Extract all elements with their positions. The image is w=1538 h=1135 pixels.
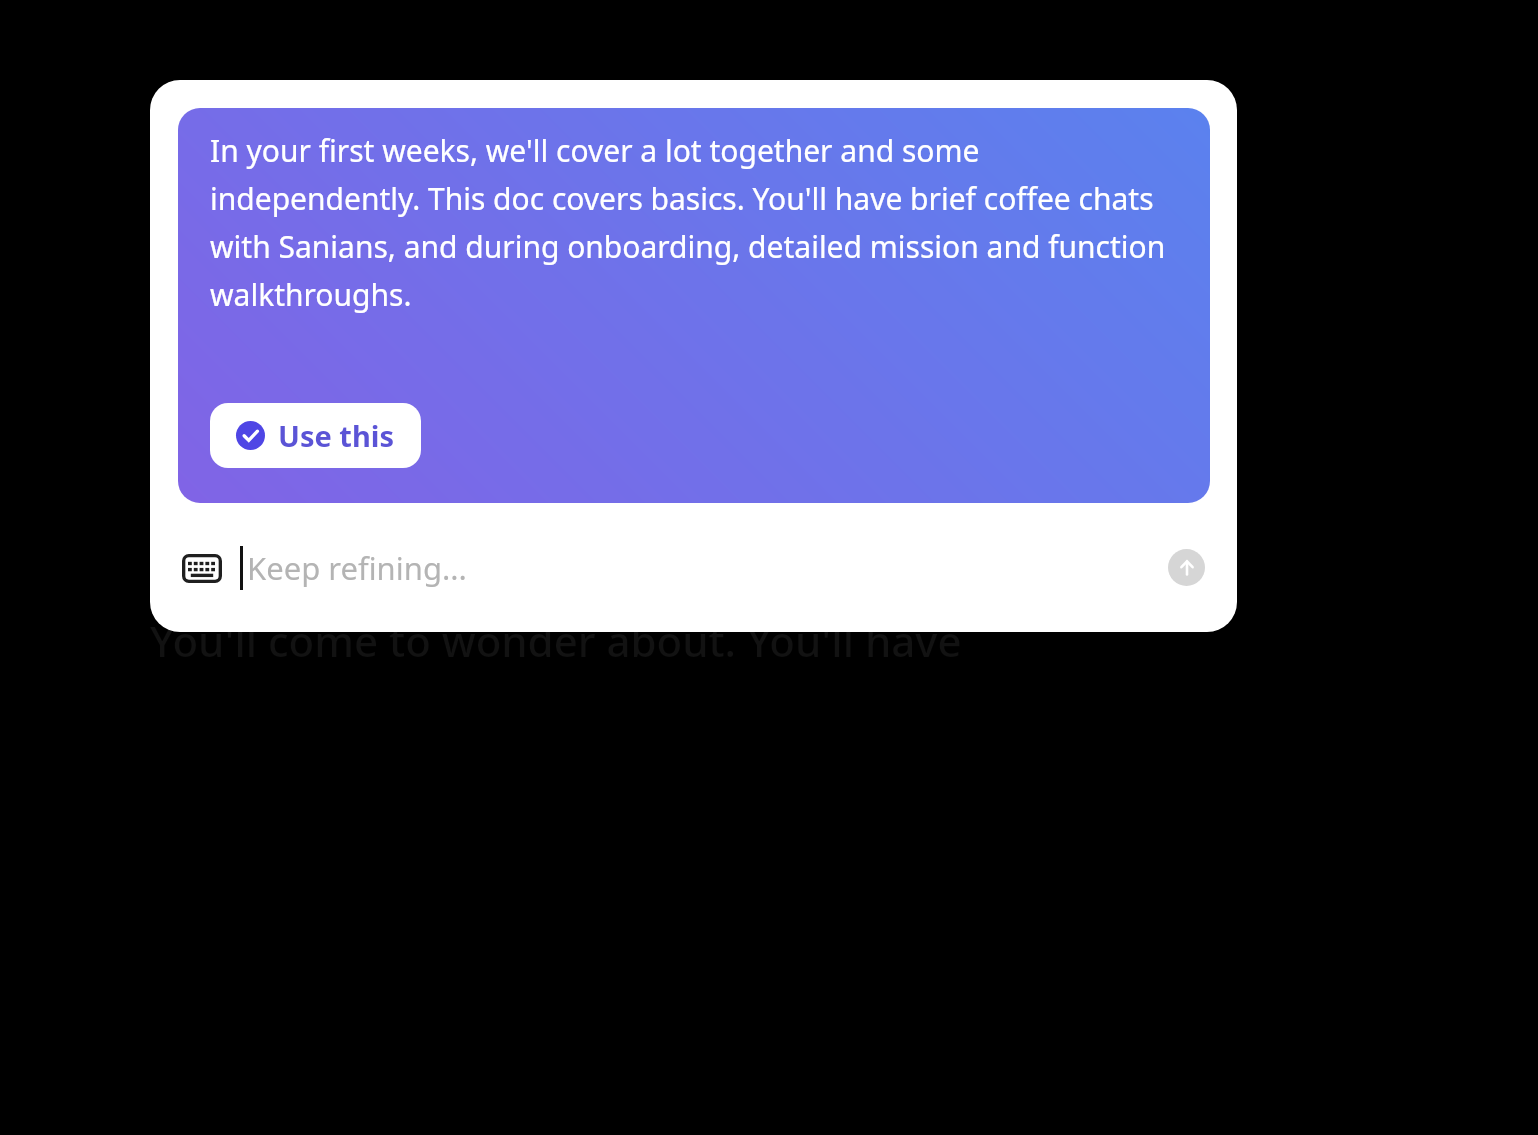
button[interactable]: Keep refining... — [247, 503, 1168, 632]
staticText: You'll come to wonder about. You'll have — [150, 612, 962, 660]
button[interactable]: Use this — [210, 403, 421, 468]
staticText: Keep refining... — [247, 547, 467, 589]
staticText: In your first weeks, we'll cover a lot t… — [210, 130, 1174, 314]
staticText: Use this — [278, 416, 395, 455]
button[interactable]: Send — [1168, 549, 1205, 586]
button[interactable]: Keyboard — [178, 544, 226, 592]
